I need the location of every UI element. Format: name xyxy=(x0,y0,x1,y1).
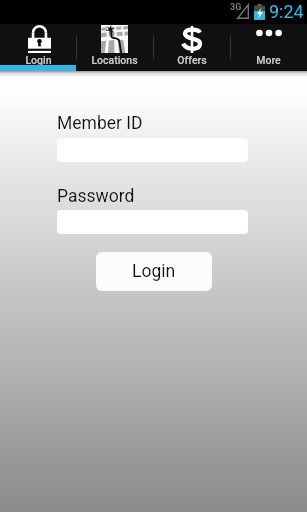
other: More xyxy=(254,28,284,38)
staticText: More xyxy=(256,54,281,66)
staticText: 9:24 xyxy=(269,1,304,22)
staticText: Offers xyxy=(177,54,207,66)
staticText: Locations xyxy=(91,54,138,66)
button[interactable]: Locations xyxy=(76,24,153,71)
staticText: Password xyxy=(57,186,135,207)
other: Offers xyxy=(182,26,202,53)
staticText: Member ID xyxy=(57,113,143,134)
staticText: Login xyxy=(132,261,176,282)
staticText: 3G xyxy=(230,2,242,13)
button[interactable]: Login xyxy=(96,252,212,291)
button[interactable]: Offers xyxy=(153,24,230,71)
other: Login xyxy=(28,25,51,53)
button[interactable]: More xyxy=(230,24,307,71)
button[interactable]: Login xyxy=(0,24,76,71)
staticText: Login xyxy=(25,54,52,66)
other: Locations xyxy=(101,25,128,53)
